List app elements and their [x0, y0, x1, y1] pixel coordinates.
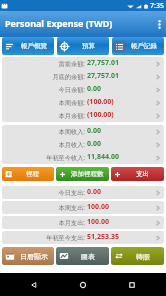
- staticText: 100.00: [87, 217, 109, 227]
- button[interactable]: 裡程: [2, 167, 54, 181]
- staticText: Personal Expense (TWD): [5, 17, 113, 29]
- button[interactable]: 帳戶概覽: [2, 37, 54, 55]
- button[interactable]: 本周余額:: [2, 96, 164, 109]
- staticText: 0.00: [87, 139, 101, 149]
- button[interactable]: 添加裡程數: [56, 167, 109, 181]
- button[interactable]: 本周支出:: [2, 201, 164, 214]
- staticText: 月底的余額:: [52, 72, 85, 80]
- staticText: (100.00): [87, 110, 114, 120]
- button[interactable]: 年初至今支出:: [2, 231, 164, 244]
- staticText: 7:35: [150, 1, 164, 11]
- staticText: 本月支出:: [58, 218, 85, 226]
- staticText: 11,844.00: [87, 152, 119, 162]
- staticText: 添加裡程數: [71, 170, 104, 178]
- button[interactable]: 支出: [111, 167, 164, 181]
- staticText: 圖表: [81, 252, 95, 261]
- staticText: (100.00): [87, 97, 114, 107]
- button[interactable]: 年初至今收入:: [2, 151, 164, 164]
- button[interactable]: 本月支出:: [2, 216, 164, 229]
- button[interactable]: 預算: [57, 37, 109, 55]
- staticText: 轉賬: [136, 252, 150, 261]
- staticText: 100.00: [87, 202, 109, 212]
- button[interactable]: 今日支出:: [2, 186, 164, 199]
- button[interactable]: 今日余額:: [2, 83, 164, 96]
- staticText: 裡程: [26, 170, 39, 178]
- button[interactable]: 當前余額:: [2, 57, 164, 70]
- staticText: 日曆顯示: [20, 252, 48, 261]
- button[interactable]: 本月余額:: [2, 109, 164, 122]
- staticText: 27,757.01: [87, 58, 119, 68]
- staticText: 本周余額:: [58, 98, 85, 106]
- button[interactable]: Home: [68, 273, 98, 296]
- staticText: 年初至今支出:: [46, 233, 85, 241]
- staticText: 本周支出:: [58, 203, 85, 211]
- staticText: 帳戶概覽: [21, 42, 47, 50]
- staticText: 支出: [136, 170, 149, 178]
- staticText: 帳戶記錄: [131, 42, 157, 50]
- staticText: 當前余額:: [58, 59, 85, 67]
- button[interactable]: 月底的余額:: [2, 70, 164, 83]
- button[interactable]: 本月收入:: [2, 138, 164, 151]
- button[interactable]: 帳戶記錄: [112, 37, 164, 55]
- staticText: 今日余額:: [58, 85, 85, 93]
- staticText: 0.00: [87, 126, 101, 136]
- button[interactable]: 轉賬: [111, 247, 164, 265]
- button[interactable]: More options: [153, 11, 166, 37]
- button[interactable]: 本周收入:: [2, 125, 164, 138]
- staticText: 51,253.35: [87, 232, 119, 242]
- staticText: 本周收入:: [58, 127, 85, 135]
- button[interactable]: 圖表: [56, 247, 109, 265]
- staticText: 27,757.01: [87, 71, 119, 81]
- staticText: 預算: [82, 42, 95, 50]
- button[interactable]: 日曆顯示: [2, 247, 54, 265]
- staticText: 本月余額:: [58, 111, 85, 119]
- staticText: 0.00: [87, 187, 101, 197]
- staticText: 0.00: [87, 84, 101, 94]
- button[interactable]: Recents: [117, 273, 147, 296]
- staticText: 今日支出:: [58, 188, 85, 196]
- button[interactable]: Back: [19, 273, 49, 296]
- staticText: 年初至今收入:: [46, 153, 85, 161]
- staticText: 本月收入:: [58, 140, 85, 148]
